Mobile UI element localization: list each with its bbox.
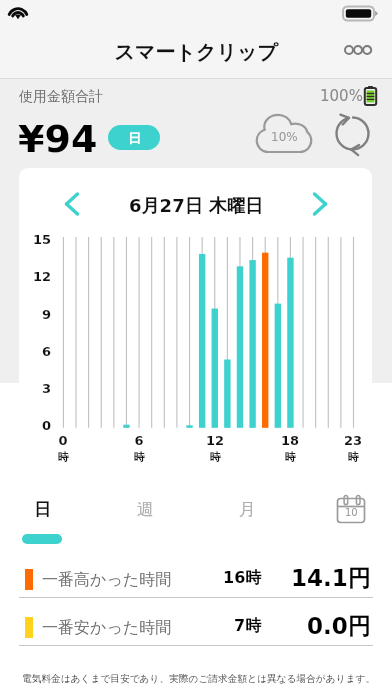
button[interactable]: Refresh [333, 114, 372, 153]
staticText: 月 [239, 499, 256, 520]
button[interactable]: 日 [0, 482, 84, 548]
staticText: 使用金額合計 [19, 88, 103, 106]
button[interactable]: 一番安かった時間 [0, 611, 392, 645]
button[interactable]: 週 [103, 482, 187, 548]
staticText: 時 [195, 450, 235, 464]
button[interactable]: 一番高かった時間 [0, 563, 392, 597]
button[interactable]: 日 [108, 125, 160, 150]
staticText: 9 [42, 307, 52, 322]
staticText: 週 [137, 499, 154, 520]
staticText: 18 [270, 433, 310, 448]
staticText: 12 [195, 433, 235, 448]
staticText: ¥94 [18, 117, 98, 161]
button[interactable]: Cloud storage 10 percent [255, 114, 313, 154]
staticText: 10 [345, 507, 358, 519]
staticText: 6 [42, 344, 52, 359]
staticText: 14.1円 [291, 564, 371, 592]
staticText: 16時 [223, 568, 262, 588]
staticText: 時 [119, 450, 159, 464]
staticText: 0 [43, 433, 83, 448]
staticText: 3 [42, 381, 52, 396]
button[interactable]: More options [336, 28, 380, 72]
staticText: 0 [42, 418, 52, 433]
button[interactable]: 月 [205, 482, 289, 548]
staticText: 100% [320, 87, 363, 104]
staticText: 15 [33, 232, 52, 247]
staticText: 一番高かった時間 [42, 570, 172, 590]
staticText: 時 [270, 450, 310, 464]
staticText: 23 [333, 433, 373, 448]
staticText: 時 [43, 450, 83, 464]
staticText: 10% [271, 130, 298, 144]
staticText: 電気料金はあくまで目安であり、実際のご請求金額とは異なる場合があります。 [22, 673, 376, 685]
staticText: 一番安かった時間 [42, 618, 172, 638]
button[interactable]: Calendar [336, 494, 366, 524]
staticText: 時 [333, 450, 373, 464]
staticText: スマートクリップ [0, 40, 392, 65]
staticText: 日 [34, 499, 51, 520]
staticText: 6月27日 木曜日 [0, 195, 392, 218]
staticText: 日 [128, 130, 141, 146]
staticText: 0.0円 [307, 612, 371, 640]
staticText: 12 [33, 269, 52, 284]
button[interactable]: Previous day [55, 187, 89, 221]
staticText: 6 [119, 433, 159, 448]
staticText: 7時 [234, 616, 262, 636]
button[interactable]: Next day [303, 187, 337, 221]
